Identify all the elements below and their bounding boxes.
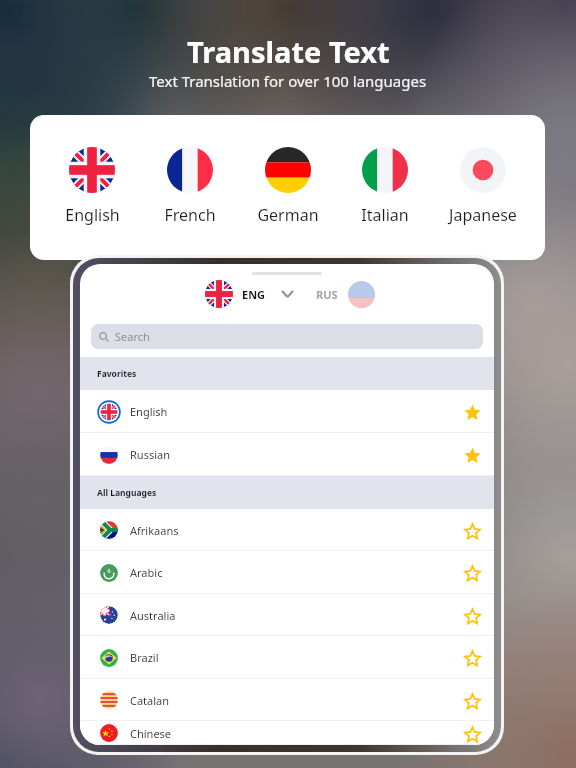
button[interactable]: Italian [339,147,431,226]
staticText: Brazil [130,650,159,665]
button[interactable]: Japanese [437,147,529,226]
button[interactable]: Brazil [80,636,494,679]
button[interactable]: Afrikaans [80,509,494,551]
button[interactable]: Search [91,324,483,349]
staticText: Translate Text [187,32,390,71]
button[interactable]: Russian [80,433,494,476]
button[interactable]: Chinese [80,721,494,745]
staticText: Catalan [130,693,170,708]
button[interactable]: German [242,147,334,226]
staticText: English [130,404,168,419]
button[interactable]: RUS [316,280,375,308]
staticText: French [164,204,216,226]
button[interactable]: French [144,147,236,226]
other: Change language [282,291,293,297]
staticText: English [65,204,120,226]
staticText: Chinese [130,726,172,741]
staticText: Favorites [97,368,137,380]
staticText: Japanese [449,204,517,226]
staticText: Italian [361,204,409,226]
staticText: Russian [130,447,170,462]
button[interactable]: Arabic [80,551,494,594]
button[interactable]: English [80,390,494,433]
staticText: Search [115,329,150,344]
staticText: Text Translation for over 100 languages [149,71,427,91]
button[interactable]: Australia [80,594,494,636]
staticText: RUS [316,287,338,302]
staticText: Australia [130,608,176,623]
staticText: German [257,204,319,226]
staticText: Afrikaans [130,523,179,538]
button[interactable]: ENG [205,280,293,308]
button[interactable]: English [46,147,138,226]
staticText: ENG [242,287,266,302]
staticText: Arabic [130,565,163,580]
staticText: All Languages [97,487,157,499]
button[interactable]: Catalan [80,679,494,721]
